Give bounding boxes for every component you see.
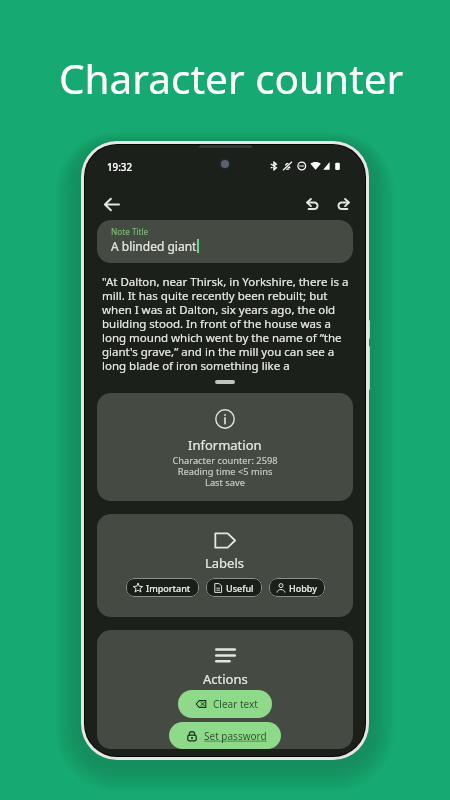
button[interactable]: Back [98, 191, 124, 217]
button[interactable]: Actions [97, 630, 353, 749]
staticText: Important [146, 582, 191, 594]
button[interactable]: Undo [299, 190, 325, 216]
staticText: Useful [226, 582, 254, 594]
button[interactable]: Information [97, 393, 353, 501]
button[interactable]: Set password [169, 722, 281, 749]
staticText: 19:32 [107, 161, 133, 174]
button[interactable]: Labels [97, 514, 353, 617]
staticText: Character counter [59, 51, 404, 106]
staticText: Actions [203, 670, 248, 688]
button[interactable]: Hobby [269, 578, 325, 597]
button[interactable]: Clear text [178, 690, 272, 718]
staticText: Character counter: 2598 Reading time <5 … [172, 454, 278, 489]
staticText: "At Dalton, near Thirsk, in Yorkshire, t… [102, 274, 352, 373]
button[interactable]: Redo [330, 190, 356, 216]
button[interactable]: Important [126, 578, 199, 597]
staticText: Set password [204, 729, 267, 743]
button[interactable]: Note Title [97, 220, 353, 263]
staticText: Information [188, 436, 262, 454]
staticText: Hobby [289, 582, 317, 594]
staticText: Labels [205, 554, 245, 572]
staticText: Clear text [213, 697, 258, 711]
button[interactable]: Useful [206, 578, 262, 597]
staticText: Note Title [111, 226, 149, 237]
staticText: A blinded giant [111, 238, 197, 254]
